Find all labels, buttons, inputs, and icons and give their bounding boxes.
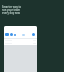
staticText: every day now bbox=[2, 11, 20, 14]
staticText: Smarter way to bbox=[2, 5, 22, 8]
button[interactable]: Profile bbox=[32, 33, 35, 36]
button[interactable] bbox=[5, 40, 36, 41]
button[interactable]: Primary action bbox=[5, 33, 9, 36]
button[interactable] bbox=[5, 43, 36, 44]
button[interactable]: Badge bbox=[22, 34, 25, 36]
button[interactable]: Avatar bbox=[10, 33, 13, 36]
staticText: run your team bbox=[2, 8, 20, 11]
